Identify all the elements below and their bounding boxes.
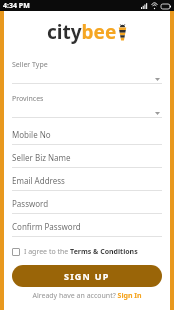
button[interactable]: I agree to the Terms & Conditions (12, 247, 162, 257)
button[interactable]: SIGN UP (12, 265, 162, 287)
staticText: Mobile No (12, 129, 51, 140)
staticText: Seller Biz Name (12, 152, 71, 163)
button[interactable]: Mobile No (12, 125, 162, 145)
staticText: Email Address (12, 175, 65, 186)
button[interactable]: Seller Type (12, 57, 162, 84)
staticText: I agree to the Terms & Conditions (24, 247, 138, 257)
staticText: 4:34 PM (3, 1, 30, 11)
staticText: SIGN UP (64, 270, 110, 282)
staticText: Already have an account? Sign In (12, 291, 162, 301)
button[interactable]: Email Address (12, 171, 162, 191)
button[interactable]: Seller Biz Name (12, 148, 162, 168)
button[interactable]: Password (12, 194, 162, 214)
button[interactable]: Confirm Password (12, 217, 162, 237)
staticText: Provinces (12, 94, 44, 104)
staticText: Password (12, 198, 49, 209)
button[interactable]: Provinces (12, 91, 162, 118)
staticText: citybee (47, 19, 117, 45)
staticText: Seller Type (12, 60, 48, 70)
staticText: Confirm Password (12, 221, 81, 232)
